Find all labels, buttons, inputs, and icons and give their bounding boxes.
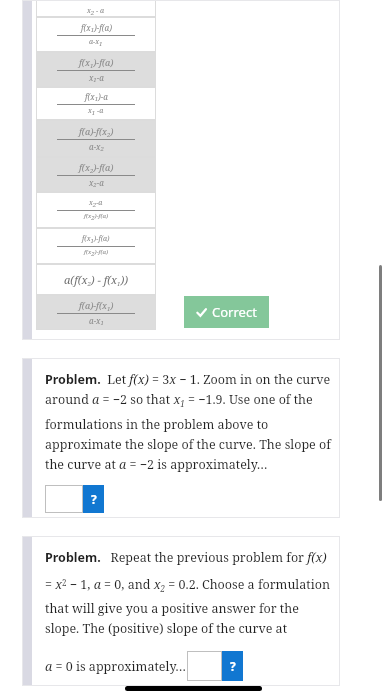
staticText: a−x2 bbox=[89, 141, 104, 153]
staticText: f(x2)−f(a) bbox=[84, 248, 109, 258]
staticText: ? bbox=[230, 658, 236, 674]
staticText: f(a)−f(x1) bbox=[79, 299, 114, 312]
staticText: x1 −a bbox=[88, 106, 104, 117]
staticText: a−x1 bbox=[89, 37, 103, 48]
staticText: f(x1)−f(a) bbox=[81, 22, 112, 34]
staticText: a(f(x2) − f(x1)) bbox=[64, 272, 129, 287]
staticText: f(x1)−f(a) bbox=[79, 56, 114, 69]
button[interactable]: f(x1)−f(a) bbox=[36, 17, 156, 52]
staticText: f(x1)−f(a) bbox=[82, 234, 110, 245]
button[interactable] bbox=[187, 651, 222, 681]
button[interactable]: Correct bbox=[184, 296, 269, 328]
button[interactable]: x2−a bbox=[36, 192, 156, 228]
staticText: a−x1 bbox=[89, 315, 104, 327]
button[interactable] bbox=[45, 485, 83, 513]
staticText: a = 0 is approximately… bbox=[45, 658, 187, 675]
staticText: f(x2)−f(a) bbox=[84, 212, 109, 222]
button[interactable]: f(x1)−f(a) bbox=[36, 228, 156, 264]
button[interactable]: f(x1)−a bbox=[36, 87, 156, 120]
staticText: f(x2)−f(a) bbox=[79, 161, 114, 174]
staticText: x2 − a bbox=[87, 6, 105, 17]
staticText: Problem. Repeat the previous problem for… bbox=[45, 549, 332, 637]
staticText: x2−a bbox=[89, 177, 104, 189]
staticText: Problem. Let f(x) = 3x − 1. Zoom in on t… bbox=[45, 371, 332, 473]
staticText: f(a)−f(x2) bbox=[79, 125, 114, 138]
staticText: ? bbox=[91, 491, 97, 507]
button[interactable]: a(f(x2) − f(x1)) bbox=[36, 264, 156, 295]
button[interactable]: Help bbox=[222, 651, 243, 681]
button[interactable]: Help bbox=[83, 485, 104, 513]
button[interactable]: x2 − a bbox=[36, 0, 156, 17]
button[interactable]: f(x1)−f(a) bbox=[36, 52, 156, 87]
button[interactable]: f(a)−f(x1) bbox=[36, 295, 156, 330]
staticText: f(x1)−a bbox=[85, 91, 108, 103]
button[interactable]: f(a)−f(x2) bbox=[36, 120, 156, 157]
staticText: Correct bbox=[212, 303, 257, 321]
staticText: x2−a bbox=[89, 198, 103, 209]
staticText: x1−a bbox=[89, 72, 104, 84]
button[interactable]: f(x2)−f(a) bbox=[36, 157, 156, 192]
